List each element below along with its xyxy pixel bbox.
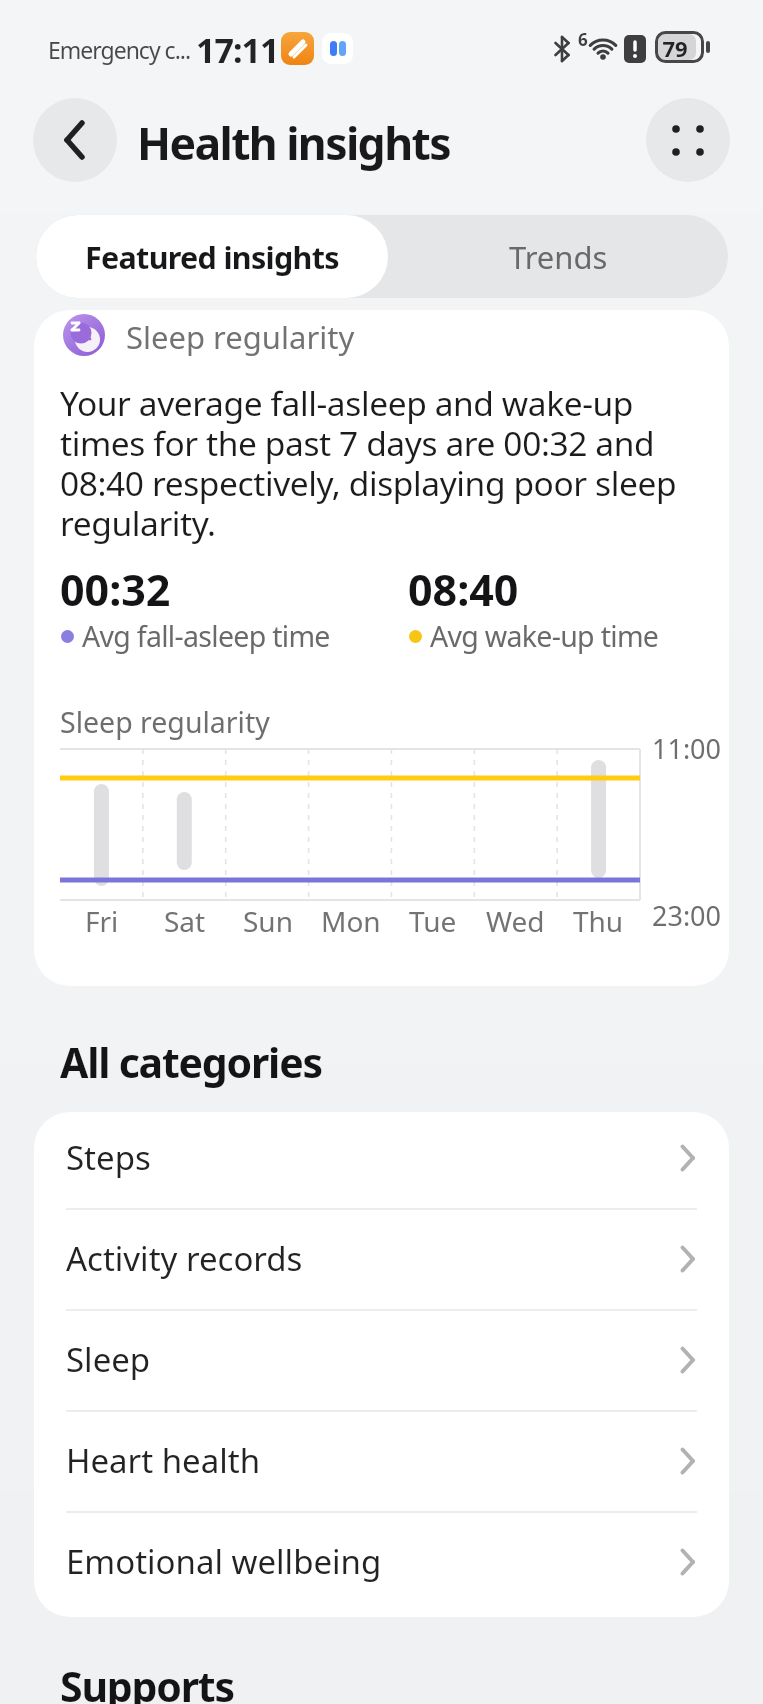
staticText: 79 xyxy=(661,33,689,63)
button[interactable]: Emotional wellbeing xyxy=(34,1511,729,1612)
staticText: Tue xyxy=(409,902,457,940)
staticText: Trends xyxy=(509,236,608,278)
staticText: All categories xyxy=(60,1034,322,1090)
button[interactable]: Featured insights xyxy=(36,215,388,298)
staticText: Emergency c... xyxy=(48,34,191,65)
staticText: 08:40 respectively, displaying poor slee… xyxy=(60,460,677,506)
staticText: Sleep regularity xyxy=(126,316,355,358)
staticText: Thu xyxy=(573,902,624,940)
staticText: Sat xyxy=(164,902,206,940)
staticText: times for the past 7 days are 00:32 and xyxy=(60,420,655,466)
staticText: Fri xyxy=(85,902,119,940)
staticText: 11:00 xyxy=(652,730,722,767)
staticText: Sleep xyxy=(66,1337,151,1382)
staticText: Featured insights xyxy=(85,236,339,278)
staticText: Avg wake-up time xyxy=(430,617,659,656)
staticText: Wed xyxy=(486,902,545,940)
staticText: 08:40 xyxy=(408,560,519,619)
staticText: 17:11 xyxy=(196,27,279,73)
button[interactable]: Trends xyxy=(388,215,728,298)
staticText: 00:32 xyxy=(60,560,171,619)
staticText: Mon xyxy=(321,902,381,940)
button[interactable]: Heart health xyxy=(34,1410,729,1511)
staticText: Avg fall-asleep time xyxy=(82,617,330,656)
staticText: regularity. xyxy=(60,500,216,546)
staticText: Steps xyxy=(66,1135,151,1180)
staticText: Health insights xyxy=(137,112,450,173)
button[interactable]: Sleep xyxy=(34,1309,729,1410)
button[interactable]: Activity records xyxy=(34,1208,729,1309)
staticText: Sun xyxy=(243,902,293,940)
button[interactable] xyxy=(646,98,730,182)
staticText: Your average fall-asleep and wake-up xyxy=(60,380,634,426)
staticText: 6 xyxy=(578,28,588,51)
staticText: 23:00 xyxy=(652,897,722,934)
staticText: Supports xyxy=(60,1658,234,1704)
button[interactable] xyxy=(33,98,117,182)
button[interactable]: Steps xyxy=(34,1112,729,1208)
staticText: Activity records xyxy=(66,1236,303,1281)
staticText: Emotional wellbeing xyxy=(66,1539,382,1584)
staticText: Heart health xyxy=(66,1438,261,1483)
staticText: Sleep regularity xyxy=(60,703,270,742)
